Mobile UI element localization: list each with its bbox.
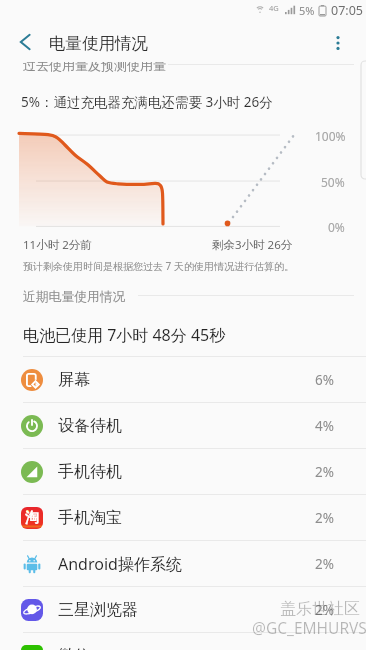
button[interactable]: 三星浏览器 bbox=[0, 587, 366, 632]
staticText: 2% bbox=[315, 601, 334, 619]
staticText: 预计剩余使用时间是根据您过去 7 天的使用情况进行估算的。 bbox=[23, 259, 294, 273]
staticText: 近期电量使用情况 bbox=[23, 289, 126, 305]
staticText: 三星浏览器 bbox=[58, 600, 330, 620]
staticText: 剩余3小时 26分 bbox=[212, 237, 293, 253]
staticText: 50% bbox=[321, 174, 345, 190]
staticText: 07:05 bbox=[331, 2, 363, 18]
button[interactable]: 屏幕 bbox=[0, 357, 366, 402]
button[interactable]: Back bbox=[10, 27, 40, 57]
staticText: 11小时 2分前 bbox=[23, 237, 92, 253]
staticText: 4% bbox=[315, 417, 334, 435]
staticText: 5%：通过充电器充满电还需要 3小时 26分 bbox=[21, 93, 273, 111]
staticText: 手机待机 bbox=[58, 462, 330, 482]
staticText: 电池已使用 7小时 48分 45秒 bbox=[23, 324, 226, 346]
button[interactable]: 淘 bbox=[0, 495, 366, 540]
staticText: Android操作系统 bbox=[58, 553, 330, 575]
staticText: @GC_EMHURVS bbox=[252, 617, 366, 638]
staticText: 手机淘宝 bbox=[58, 508, 330, 528]
staticText: 淘 bbox=[25, 509, 39, 527]
button[interactable]: 手机待机 bbox=[0, 449, 366, 494]
button[interactable]: 设备待机 bbox=[0, 403, 366, 448]
staticText: 6% bbox=[315, 371, 334, 389]
button[interactable]: More options bbox=[322, 27, 353, 58]
staticText: 5% bbox=[299, 3, 315, 18]
staticText: 电量使用情况 bbox=[49, 33, 148, 54]
staticText: 2% bbox=[315, 463, 334, 481]
staticText: 屏幕 bbox=[58, 370, 330, 390]
staticText: 盖乐世社区 bbox=[280, 599, 360, 619]
staticText: 过去使用量及预测使用量 bbox=[23, 57, 166, 73]
staticText: 2% bbox=[315, 555, 334, 573]
staticText: 100% bbox=[315, 128, 346, 144]
staticText: 设备待机 bbox=[58, 416, 330, 436]
staticText: 0% bbox=[328, 219, 345, 235]
staticText: 4G bbox=[269, 3, 279, 13]
button[interactable]: Android操作系统 bbox=[0, 541, 366, 586]
staticText: 2% bbox=[315, 509, 334, 527]
staticText: 微信 bbox=[58, 646, 330, 650]
button[interactable]: 微信 bbox=[0, 633, 366, 650]
